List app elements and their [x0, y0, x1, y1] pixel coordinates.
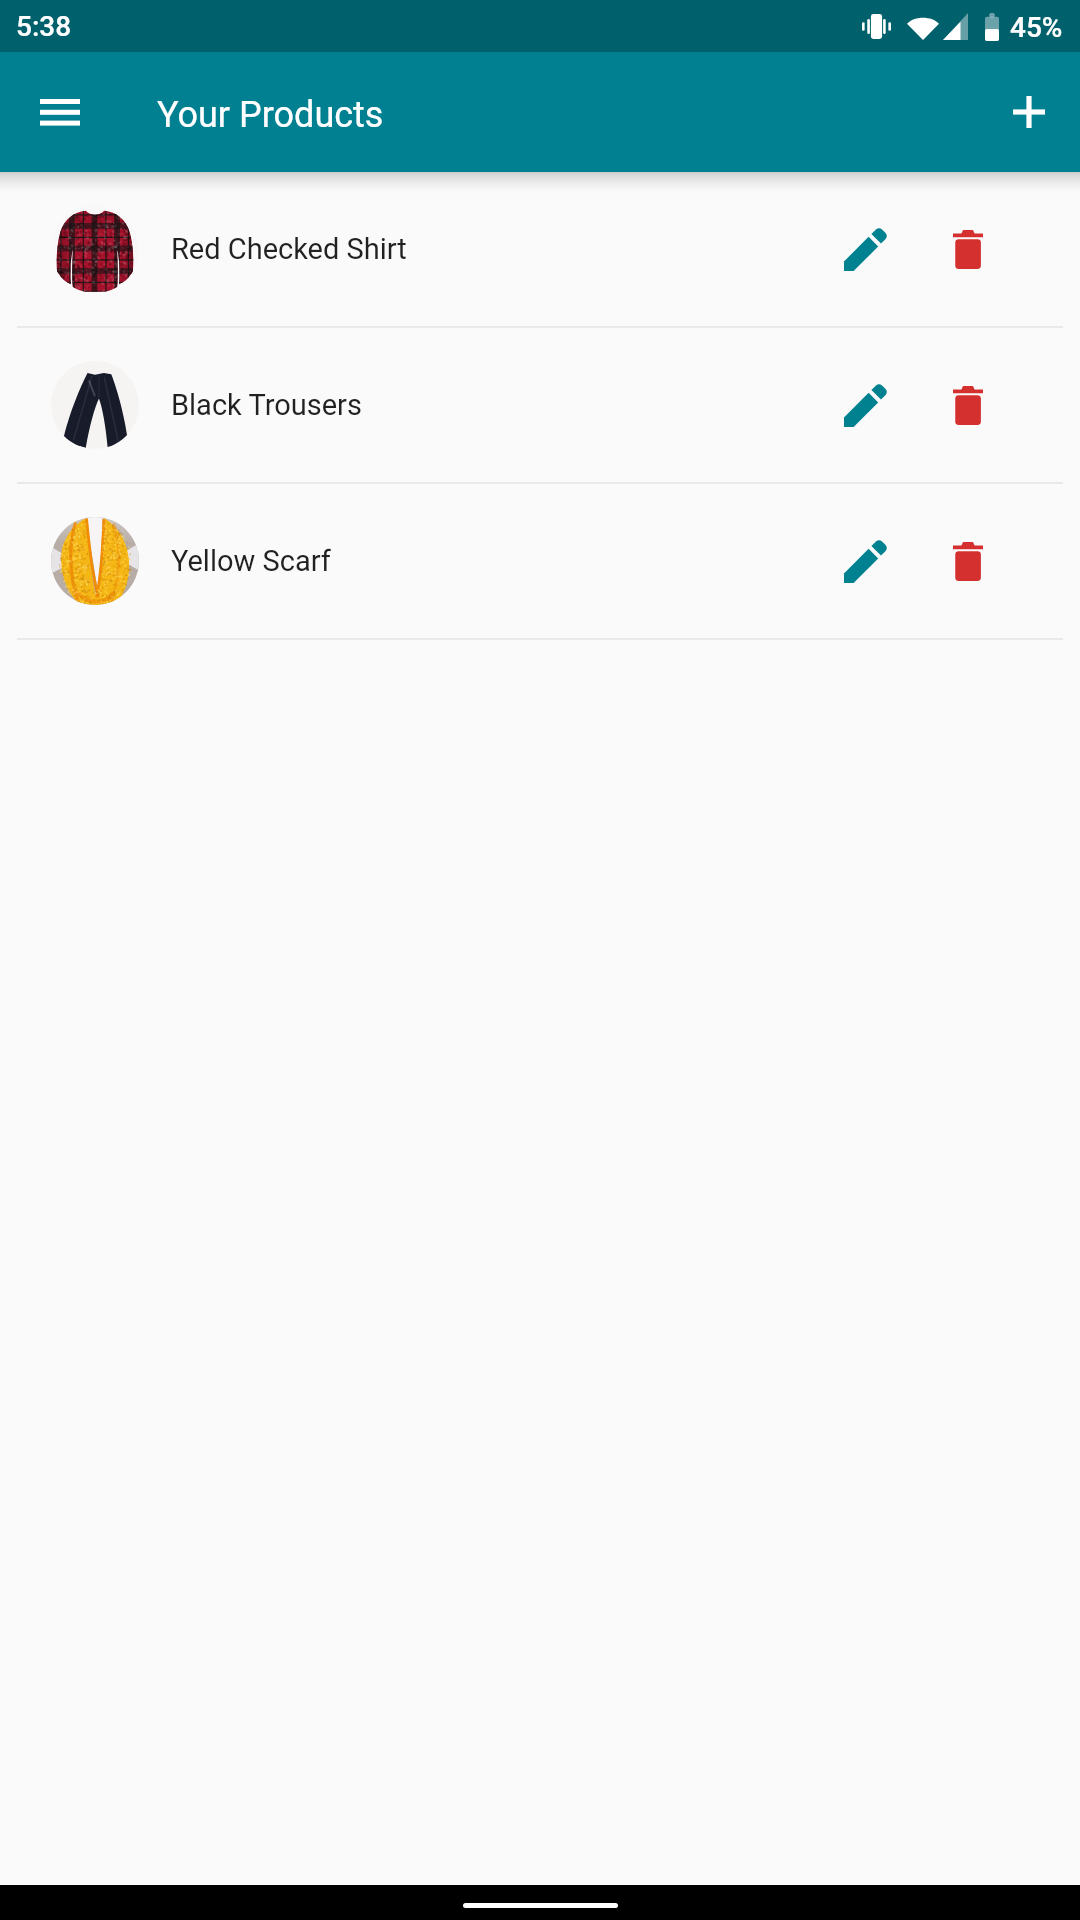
button[interactable]: Delete Yellow Scarf	[926, 519, 1010, 603]
staticText: 45%	[1010, 11, 1063, 44]
button[interactable]: Edit Red Checked Shirt	[823, 207, 907, 291]
button[interactable]: Delete Black Trousers	[926, 363, 1010, 447]
staticText: Your Products	[157, 94, 384, 136]
button[interactable]: Edit Black Trousers	[823, 363, 907, 447]
button[interactable]: Red Checked Shirt	[0, 172, 1080, 326]
staticText: Yellow Scarf	[171, 544, 331, 578]
button[interactable]: Add product	[987, 70, 1071, 154]
button[interactable]: Delete Red Checked Shirt	[926, 207, 1010, 291]
staticText: Black Trousers	[171, 388, 362, 422]
staticText: Red Checked Shirt	[171, 232, 407, 266]
button[interactable]: Black Trousers	[0, 328, 1080, 482]
button[interactable]: Open navigation menu	[18, 70, 102, 154]
button[interactable]: Edit Yellow Scarf	[823, 519, 907, 603]
button[interactable]: Yellow Scarf	[0, 484, 1080, 638]
staticText: 5:38	[16, 10, 72, 43]
